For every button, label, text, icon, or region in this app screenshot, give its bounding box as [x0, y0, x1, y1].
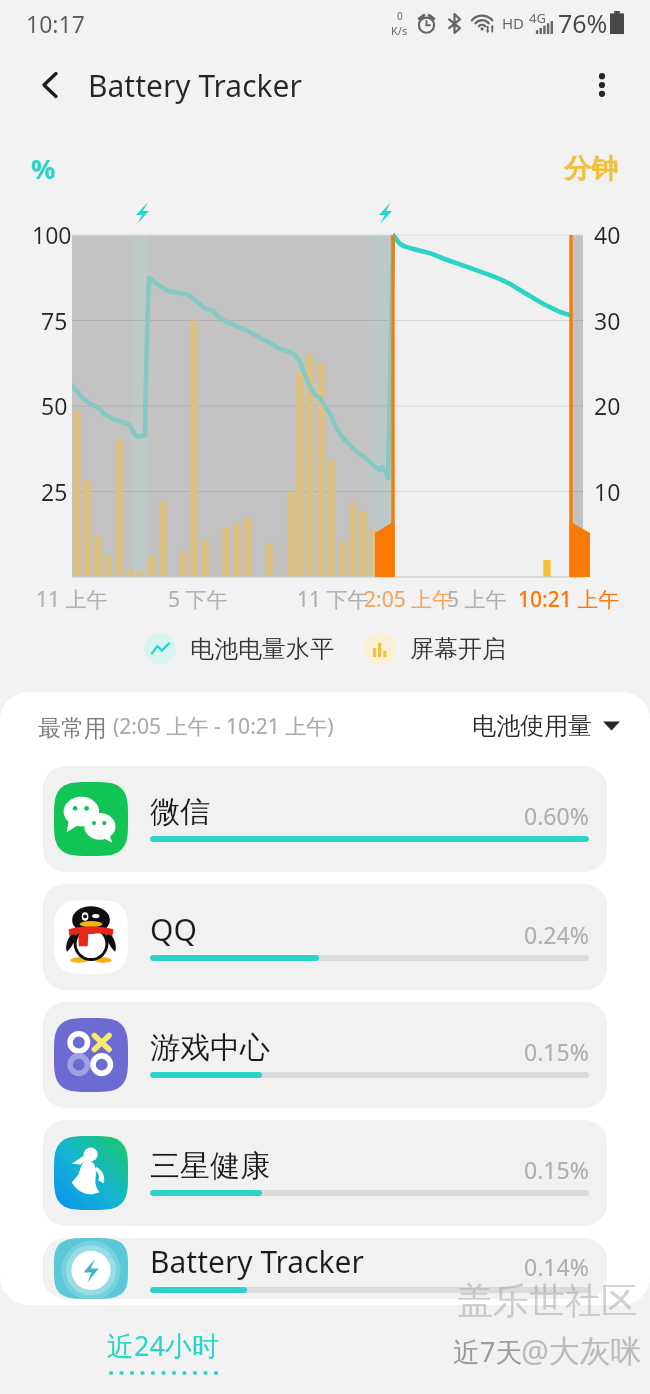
staticText: 10	[594, 476, 621, 507]
button[interactable]: Back	[22, 57, 78, 113]
staticText: 近7天	[453, 1333, 523, 1370]
staticText: 20	[594, 390, 621, 421]
staticText: @大灰咪	[521, 1329, 642, 1371]
staticText: 三星健康	[150, 1147, 270, 1185]
button[interactable]: 三星健康	[43, 1120, 607, 1226]
staticText: 75	[41, 305, 68, 336]
button[interactable]: 近7天	[325, 1308, 650, 1394]
staticText: 0.14%	[524, 1251, 589, 1282]
button[interactable]: 微信	[43, 766, 607, 872]
staticText: 0.15%	[524, 1036, 589, 1067]
button[interactable]: QQ	[43, 884, 607, 990]
staticText: Battery Tracker	[88, 65, 302, 106]
staticText: 最常用	[38, 711, 113, 742]
button[interactable]: 游戏中心	[43, 1002, 607, 1108]
staticText: 76%	[558, 6, 608, 40]
staticText: (2:05 上午 - 10:21 上午)	[113, 712, 334, 741]
staticText: HD	[502, 13, 525, 33]
staticText: 2:05 上午	[364, 585, 454, 614]
staticText: 0	[397, 9, 403, 23]
staticText: 50	[41, 390, 68, 421]
staticText: QQ	[150, 909, 197, 950]
staticText: 4G	[529, 9, 546, 27]
staticText: 0.24%	[524, 919, 589, 950]
staticText: 电池电量水平	[190, 634, 334, 664]
staticText: 10:21 上午	[518, 585, 620, 614]
staticText: 屏幕开启	[410, 634, 506, 664]
staticText: 微信	[150, 793, 210, 831]
staticText: 30	[594, 305, 621, 336]
staticText: 40	[594, 219, 621, 250]
button[interactable]: 近24小时	[0, 1308, 325, 1394]
staticText: 游戏中心	[150, 1029, 270, 1067]
button[interactable]: Battery Tracker	[43, 1238, 607, 1299]
staticText: 5 下午	[168, 585, 228, 614]
button[interactable]: 电池使用量	[472, 711, 620, 741]
staticText: K/s	[391, 23, 408, 38]
staticText: 10:17	[26, 8, 85, 39]
staticText: 0.15%	[524, 1154, 589, 1185]
button[interactable]: More options	[574, 57, 630, 113]
staticText: 25	[41, 476, 68, 507]
staticText: 电池使用量	[472, 711, 592, 741]
staticText: 11 上午	[36, 585, 108, 614]
staticText: 近24小时	[107, 1327, 219, 1364]
staticText: 分钟	[564, 152, 618, 186]
staticText: 0.60%	[524, 800, 589, 831]
staticText: 盖乐世社区	[457, 1278, 637, 1323]
staticText: %	[31, 150, 56, 187]
staticText: 5 上午	[447, 585, 507, 614]
staticText: 11 下午	[297, 585, 369, 614]
staticText: Battery Tracker	[150, 1241, 364, 1282]
staticText: 100	[32, 219, 72, 250]
